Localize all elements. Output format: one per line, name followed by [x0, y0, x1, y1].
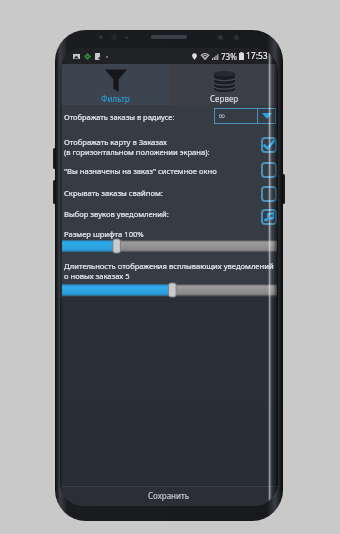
button[interactable]: Фильтр [60, 64, 170, 105]
staticText: Отображать карту в Заказах [64, 137, 167, 147]
button[interactable]: Сервер [170, 64, 278, 105]
button[interactable]: Выбор звуков уведомлений [261, 209, 277, 225]
staticText: Размер шрифта 100% [64, 229, 144, 239]
staticText: Отображать заказы в радиусе: [64, 112, 175, 122]
staticText: "Вы назначены на заказ" системное окно [64, 166, 217, 176]
button[interactable]: Опция выключена [261, 162, 277, 178]
staticText: 17:53 [246, 50, 268, 62]
staticText: Сохранить [148, 490, 190, 501]
button[interactable]: Ползунок [60, 282, 278, 298]
button[interactable]: Радиус [214, 108, 276, 124]
staticText: Сервер [210, 93, 239, 104]
staticText: Выбор звуков уведомлений: [64, 209, 169, 219]
staticText: 73% [221, 51, 237, 62]
staticText: Фильтр [101, 93, 130, 104]
button[interactable]: Ползунок [60, 238, 278, 254]
staticText: о новых заказах 5 [64, 271, 130, 281]
button[interactable]: Опция включена [261, 137, 277, 153]
staticText: (в горизонтальном положении экрана): [64, 147, 210, 157]
staticText: ∞ [218, 111, 226, 121]
staticText: Скрывать заказы свайпом: [64, 188, 163, 198]
button[interactable]: Опция выключена [261, 186, 277, 202]
staticText: Длительность отображения всплывающих уве… [64, 261, 274, 271]
button[interactable]: Сохранить [60, 486, 278, 506]
